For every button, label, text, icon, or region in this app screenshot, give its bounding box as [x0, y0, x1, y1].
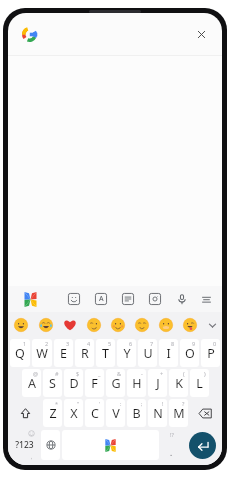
button[interactable]: D: [64, 369, 83, 397]
button[interactable]: Emoji 6: [130, 312, 154, 338]
button[interactable]: Camera: [144, 288, 166, 310]
button[interactable]: !?: [160, 428, 183, 462]
button[interactable]: Emoji 1: [8, 312, 33, 338]
staticText: -: [141, 370, 143, 377]
staticText: ?: [182, 400, 185, 407]
button[interactable]: H: [127, 369, 146, 397]
staticText: ": [77, 400, 80, 407]
staticText: 3: [66, 340, 70, 347]
staticText: 2: [45, 340, 49, 347]
button[interactable]: F: [85, 369, 104, 397]
staticText: 4: [87, 340, 91, 347]
button[interactable]: Change language: [41, 430, 60, 460]
button[interactable]: K: [169, 369, 188, 397]
staticText: ;: [141, 400, 143, 407]
staticText: 8: [171, 340, 175, 347]
staticText: A: [99, 294, 104, 304]
button[interactable]: O: [180, 339, 199, 367]
button[interactable]: Emoji 2: [33, 312, 58, 338]
button[interactable]: L: [190, 369, 209, 397]
button[interactable]: More emoji: [202, 312, 222, 338]
staticText: .: [170, 447, 173, 458]
staticText: @: [33, 370, 38, 377]
button[interactable]: I: [159, 339, 178, 367]
staticText: 1: [23, 340, 27, 347]
staticText: 0: [213, 340, 217, 347]
staticText: :: [120, 400, 122, 407]
staticText: U: [143, 345, 153, 362]
staticText: R: [81, 345, 89, 362]
staticText: O: [185, 345, 195, 362]
button[interactable]: Google: [18, 23, 40, 45]
button[interactable]: T: [96, 339, 115, 367]
button[interactable]: Menu: [196, 288, 216, 310]
button[interactable]: ?123: [9, 428, 40, 462]
button[interactable]: S: [43, 369, 62, 397]
staticText: T: [102, 345, 109, 362]
button[interactable]: W: [32, 339, 52, 367]
button[interactable]: SwiftKey: [20, 289, 40, 309]
button[interactable]: Emoji 3: [58, 312, 82, 338]
button[interactable]: Stickers: [63, 288, 85, 310]
staticText: !?: [170, 431, 174, 438]
staticText: $: [76, 370, 80, 377]
staticText: ?123: [15, 439, 34, 451]
staticText: S: [49, 375, 56, 392]
button[interactable]: R: [75, 339, 94, 367]
button[interactable]: U: [138, 339, 157, 367]
button[interactable]: Clipboard: [117, 288, 139, 310]
button[interactable]: Close: [188, 21, 214, 47]
button[interactable]: N: [148, 399, 167, 427]
button[interactable]: Emoji 8: [178, 312, 202, 338]
button[interactable]: Shift: [10, 399, 41, 427]
staticText: Y: [123, 345, 131, 362]
button[interactable]: Backspace: [190, 399, 220, 427]
button[interactable]: M: [169, 399, 188, 427]
button[interactable]: Q: [10, 339, 30, 367]
staticText: +: [160, 370, 164, 377]
button[interactable]: P: [201, 339, 220, 367]
button[interactable]: V: [106, 399, 125, 427]
staticText: C: [91, 405, 99, 422]
staticText: 7: [150, 340, 154, 347]
button[interactable]: Y: [117, 339, 136, 367]
staticText: F: [91, 375, 98, 392]
button[interactable]: Z: [43, 399, 62, 427]
button[interactable]: B: [127, 399, 146, 427]
staticText: E: [60, 345, 67, 362]
staticText: K: [175, 375, 183, 392]
button[interactable]: J: [148, 369, 167, 397]
button[interactable]: A: [22, 369, 41, 397]
button[interactable]: G: [106, 369, 125, 397]
staticText: M: [173, 405, 185, 422]
button[interactable]: X: [64, 399, 83, 427]
staticText: V: [112, 405, 120, 422]
button[interactable]: E: [54, 339, 73, 367]
button[interactable]: Text style: [90, 288, 112, 310]
button[interactable]: Emoji 7: [154, 312, 178, 338]
staticText: D: [69, 375, 79, 392]
staticText: A: [28, 375, 36, 392]
staticText: L: [196, 375, 203, 392]
staticText: H: [132, 375, 142, 392]
button[interactable]: Emoji 5: [106, 312, 130, 338]
staticText: !: [162, 400, 164, 407]
staticText: W: [36, 345, 48, 362]
button[interactable]: Space: [62, 430, 159, 460]
staticText: #: [55, 370, 59, 377]
staticText: 9: [192, 340, 196, 347]
button[interactable]: Enter: [189, 432, 216, 459]
staticText: ': [99, 400, 101, 407]
staticText: I: [166, 345, 171, 362]
button[interactable]: Emoji 4: [82, 312, 106, 338]
staticText: _: [98, 370, 101, 377]
staticText: G: [111, 375, 121, 392]
button[interactable]: Voice input: [171, 288, 193, 310]
staticText: N: [153, 405, 163, 422]
staticText: *: [55, 400, 59, 407]
button[interactable]: C: [85, 399, 104, 427]
staticText: ,: [31, 453, 33, 460]
staticText: 6: [129, 340, 133, 347]
staticText: Z: [49, 405, 57, 422]
staticText: ): [204, 370, 206, 377]
